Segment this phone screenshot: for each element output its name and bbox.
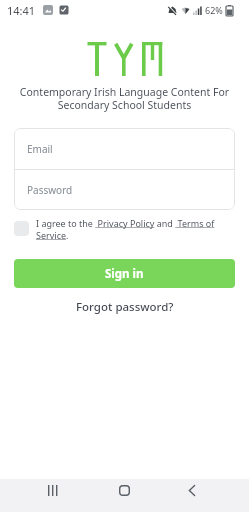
staticText: 14:41 [7,3,36,18]
button[interactable]: Forgot password? [76,299,174,315]
button[interactable]: I agree to the Privacy Policy and Terms … [36,217,215,241]
button[interactable] [113,479,135,501]
button[interactable] [42,479,64,501]
button[interactable]: Password [14,170,235,210]
staticText: Sign in [105,266,144,282]
button[interactable] [181,479,203,501]
staticText: Contemporary Irish Language Content For … [0,85,249,112]
button[interactable]: Sign in [14,259,235,288]
staticText: Password [27,183,73,197]
button[interactable]: Email [14,128,235,169]
staticText: 62% [205,4,223,16]
staticText: Service. [36,229,69,241]
staticText: I agree to the Privacy Policy and Terms … [36,217,215,229]
button[interactable] [14,221,29,236]
staticText: Email [27,142,53,156]
